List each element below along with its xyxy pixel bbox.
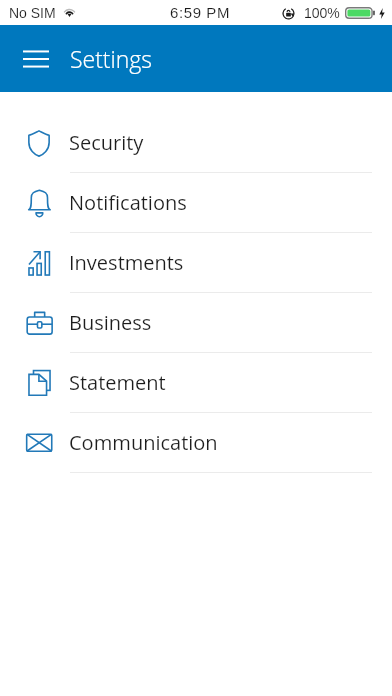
- button[interactable]: Investments: [0, 233, 392, 293]
- staticText: Communication: [69, 429, 218, 456]
- button[interactable]: Notifications: [0, 173, 392, 233]
- staticText: Settings: [70, 43, 153, 74]
- staticText: No SIM: [9, 5, 56, 21]
- staticText: Investments: [69, 249, 184, 276]
- button[interactable]: Open navigation menu: [14, 37, 58, 81]
- button[interactable]: Security: [0, 113, 392, 173]
- staticText: Statement: [69, 369, 166, 396]
- staticText: Security: [69, 129, 144, 156]
- button[interactable]: Business: [0, 293, 392, 353]
- button[interactable]: Statement: [0, 353, 392, 413]
- staticText: Business: [69, 309, 152, 336]
- button[interactable]: Communication: [0, 413, 392, 473]
- staticText: 6:59 PM: [170, 4, 231, 21]
- staticText: 100%: [304, 5, 340, 21]
- staticText: Notifications: [69, 189, 187, 216]
